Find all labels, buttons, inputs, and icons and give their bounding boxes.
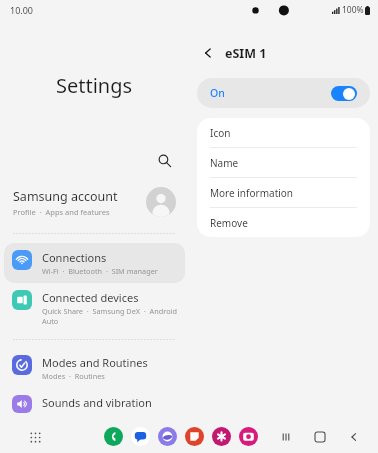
- staticText: Connections: [42, 250, 107, 265]
- staticText: Modes and Routines: [42, 355, 148, 370]
- staticText: Remove: [210, 216, 248, 230]
- button[interactable]: Sounds and vibration: [4, 388, 185, 420]
- staticText: On: [210, 86, 331, 100]
- staticText: Samsung account: [13, 188, 118, 205]
- button[interactable]: Apps: [24, 426, 46, 448]
- button[interactable]: Icon: [197, 118, 370, 148]
- button[interactable]: Connections: [4, 243, 185, 283]
- button[interactable]: Camera: [239, 427, 258, 446]
- staticText: Profile · Apps and features: [13, 207, 110, 217]
- staticText: Connected devices: [42, 290, 139, 305]
- button[interactable]: Name: [197, 148, 370, 178]
- button[interactable]: Notes: [185, 427, 204, 446]
- staticText: Modes · Routines: [42, 371, 105, 381]
- staticText: Quick Share · Samsung DeX · Android Auto: [42, 306, 177, 326]
- button[interactable]: Messages: [131, 427, 150, 446]
- button[interactable]: Remove: [197, 208, 370, 237]
- button[interactable]: Back: [195, 40, 221, 66]
- button[interactable]: Modes and Routines: [4, 348, 185, 388]
- staticText: More information: [210, 186, 294, 200]
- staticText: 100%: [342, 4, 364, 16]
- button[interactable]: Internet: [158, 427, 177, 446]
- staticText: 10.00: [10, 4, 34, 16]
- button[interactable]: Home: [310, 427, 330, 447]
- staticText: eSIM 1: [225, 45, 267, 62]
- staticText: Name: [210, 156, 239, 170]
- staticText: Sounds and vibration: [42, 395, 152, 410]
- staticText: Wi-Fi · Bluetooth · SIM manager: [42, 266, 158, 276]
- button[interactable]: Back: [344, 427, 364, 447]
- button[interactable]: Connected devices: [4, 283, 185, 333]
- button[interactable]: Samsung account: [0, 179, 189, 225]
- staticText: Icon: [210, 126, 231, 140]
- button[interactable]: Gallery: [212, 427, 231, 446]
- button[interactable]: More information: [197, 178, 370, 208]
- button[interactable]: Search: [153, 149, 175, 171]
- button[interactable]: On: [197, 78, 370, 108]
- button[interactable]: Phone: [104, 427, 123, 446]
- staticText: Settings: [56, 72, 133, 99]
- button[interactable]: Recents: [276, 427, 296, 447]
